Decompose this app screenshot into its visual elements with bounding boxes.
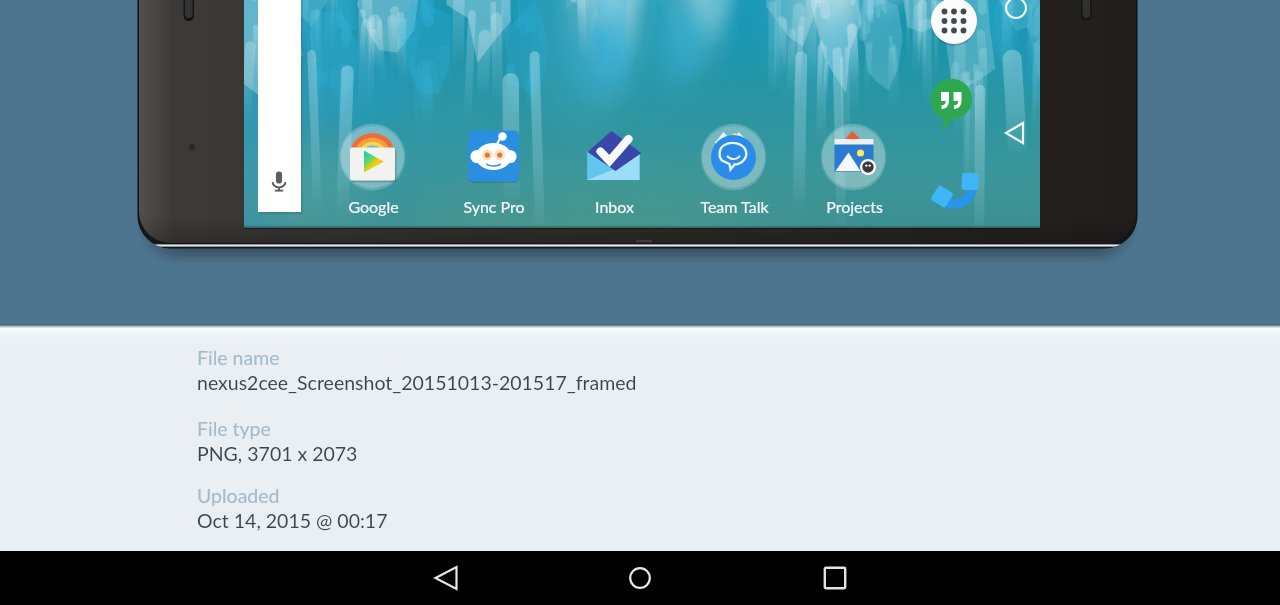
staticText: Projects	[826, 197, 883, 216]
staticText: PNG, 3701 x 2073	[197, 442, 358, 465]
button[interactable]: Uploaded	[197, 484, 388, 532]
button[interactable]: File name	[197, 346, 637, 394]
button[interactable]: Home	[613, 551, 667, 605]
button[interactable]: File type	[197, 417, 358, 465]
button[interactable]: Recent apps	[808, 551, 862, 605]
button[interactable]: Inbox	[554, 197, 674, 217]
staticText: nexus2cee_Screenshot_20151013-201517_fra…	[197, 371, 637, 394]
staticText: File type	[197, 417, 271, 440]
staticText: Team Talk	[700, 197, 769, 216]
button[interactable]: Team Talk	[674, 197, 794, 217]
staticText: Google	[348, 197, 399, 216]
staticText: Uploaded	[197, 484, 280, 507]
staticText: Inbox	[595, 197, 634, 216]
button[interactable]: Back	[420, 551, 474, 605]
button[interactable]: Google	[313, 197, 433, 217]
staticText: Sync Pro	[463, 197, 525, 216]
staticText: Oct 14, 2015 @ 00:17	[197, 509, 388, 532]
staticText: File name	[197, 346, 280, 369]
button[interactable]: Projects	[794, 197, 914, 217]
button[interactable]: Sync Pro	[434, 197, 554, 217]
